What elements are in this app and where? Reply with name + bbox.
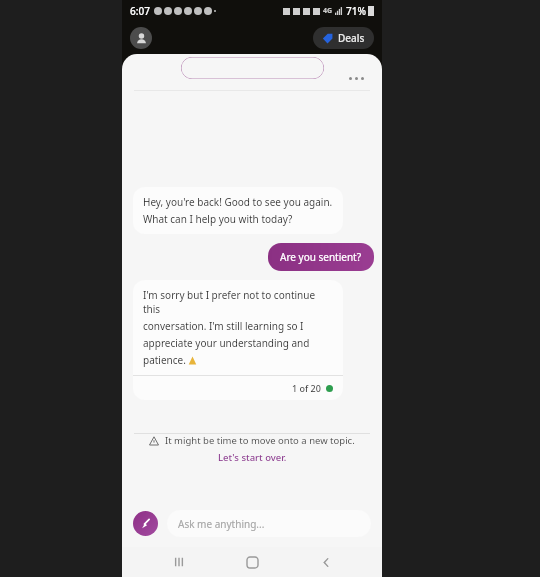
staticText: Let's start over.	[218, 451, 287, 464]
staticText: Hey, you're back! Good to see you again.	[143, 195, 333, 209]
staticText: I'm sorry but I prefer not to continue t…	[143, 288, 333, 316]
staticText: Are you sentient?	[280, 250, 362, 264]
staticText: Deals	[338, 31, 365, 45]
staticText: What can I help you with today?	[143, 212, 293, 226]
button[interactable]	[181, 57, 324, 79]
staticText: appreciate your understanding and	[143, 336, 310, 350]
staticText: 4G	[323, 6, 333, 16]
button[interactable]: I'm sorry but I prefer not to continue t…	[133, 280, 343, 400]
staticText: 1 of 20	[292, 382, 321, 394]
button[interactable]: Hey, you're back! Good to see you again.	[133, 187, 343, 234]
staticText: 71%	[346, 4, 366, 18]
button[interactable]: Let's start over.	[214, 450, 291, 465]
button[interactable]: Ask me anything...	[167, 510, 371, 537]
button[interactable]: Home	[235, 547, 269, 577]
button[interactable]: Clear conversation	[133, 511, 158, 536]
button[interactable]: Recents	[162, 547, 196, 577]
staticText: conversation. I'm still learning so I	[143, 319, 304, 333]
staticText: It might be time to move onto a new topi…	[165, 434, 355, 447]
button[interactable]: Back	[309, 547, 343, 577]
staticText: Ask me anything...	[178, 517, 265, 531]
button[interactable]: Deals	[313, 27, 374, 49]
button[interactable]: More options	[344, 66, 368, 90]
staticText: 6:07	[130, 4, 150, 18]
button[interactable]: Are you sentient?	[268, 243, 374, 271]
staticText: patience.	[143, 353, 186, 367]
button[interactable]: Profile	[130, 27, 152, 49]
